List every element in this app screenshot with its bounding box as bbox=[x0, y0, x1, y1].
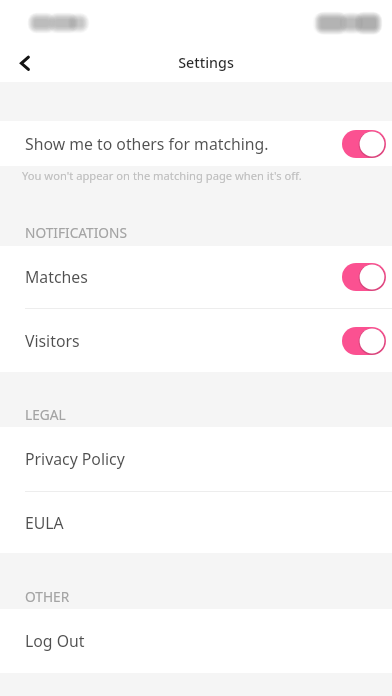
staticText: Privacy Policy bbox=[25, 448, 125, 470]
button[interactable]: Matches bbox=[0, 246, 392, 308]
staticText: Show me to others for matching. bbox=[25, 133, 269, 155]
button[interactable]: Toggle bbox=[342, 327, 386, 355]
staticText: OTHER bbox=[25, 587, 70, 606]
staticText: Matches bbox=[25, 266, 88, 288]
button[interactable]: EULA bbox=[0, 492, 392, 553]
staticText: EULA bbox=[25, 512, 64, 534]
staticText: LEGAL bbox=[25, 405, 66, 424]
staticText: Visitors bbox=[25, 330, 80, 352]
staticText: NOTIFICATIONS bbox=[25, 223, 127, 242]
staticText: You won't appear on the matching page wh… bbox=[22, 168, 302, 183]
staticText: Log Out bbox=[25, 630, 85, 652]
button[interactable]: Toggle bbox=[342, 263, 386, 291]
button[interactable]: Back bbox=[5, 42, 45, 82]
button[interactable]: Show me to others for matching. bbox=[0, 121, 392, 166]
button[interactable]: Log Out bbox=[0, 609, 392, 673]
staticText: Settings bbox=[178, 53, 234, 72]
button[interactable]: Toggle bbox=[342, 130, 386, 158]
button[interactable]: Privacy Policy bbox=[0, 427, 392, 491]
button[interactable]: Visitors bbox=[0, 309, 392, 372]
